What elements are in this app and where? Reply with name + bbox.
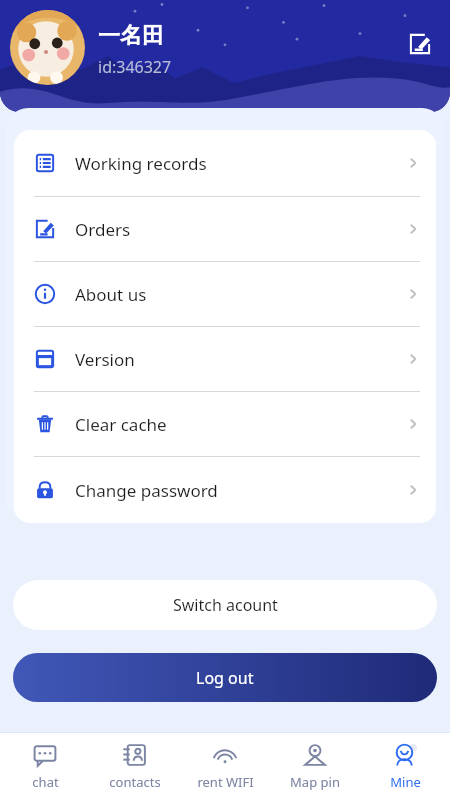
staticText: Log out — [196, 667, 254, 689]
button[interactable]: Mine — [360, 736, 450, 797]
staticText: Map pin — [290, 773, 340, 791]
button[interactable]: rent WIFI — [180, 736, 270, 797]
staticText: Switch acount — [173, 594, 278, 616]
button[interactable]: Version — [14, 327, 436, 391]
staticText: id:346327 — [98, 56, 172, 78]
staticText: Working records — [75, 152, 207, 175]
staticText: 一名田 — [98, 22, 164, 50]
staticText: Clear cache — [75, 413, 167, 436]
staticText: rent WIFI — [197, 773, 254, 791]
button[interactable]: Edit profile — [404, 28, 436, 60]
button[interactable] — [10, 10, 85, 85]
staticText: contacts — [109, 773, 161, 791]
staticText: Version — [75, 348, 135, 371]
button[interactable]: Clear cache — [14, 392, 436, 456]
staticText: About us — [75, 283, 147, 306]
button[interactable]: Working records — [14, 130, 436, 196]
button[interactable]: Switch acount — [13, 580, 437, 630]
button[interactable]: Change password — [14, 457, 436, 523]
staticText: Mine — [390, 773, 421, 791]
staticText: Change password — [75, 479, 218, 502]
staticText: Orders — [75, 218, 131, 241]
button[interactable]: chat — [0, 736, 90, 797]
button[interactable]: contacts — [90, 736, 180, 797]
button[interactable]: Orders — [14, 197, 436, 261]
staticText: chat — [32, 773, 59, 791]
button[interactable]: Log out — [13, 653, 437, 702]
button[interactable]: Map pin — [270, 736, 360, 797]
button[interactable]: About us — [14, 262, 436, 326]
